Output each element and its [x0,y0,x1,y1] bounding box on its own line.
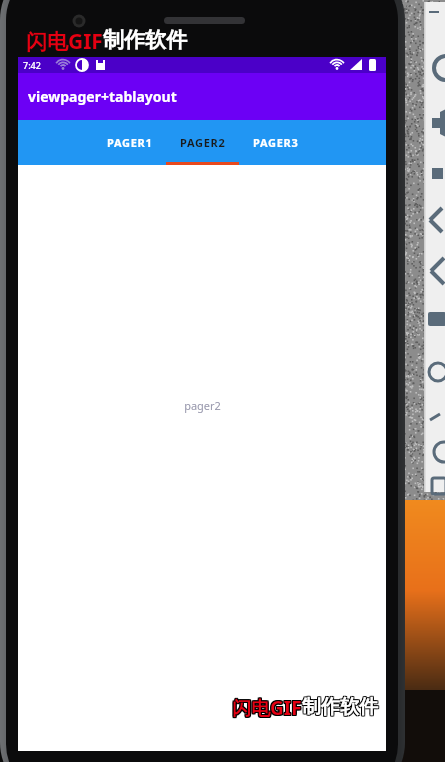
staticText: 制作软件 [302,695,378,719]
staticText: PAGER1 [107,135,153,150]
staticText: 闪电GIF [232,695,302,721]
staticText: 制作软件 [303,695,379,719]
staticText: PAGER3 [253,135,299,150]
staticText: pager2 [184,398,221,413]
staticText: 闪电GIF [231,696,301,722]
staticText: 制作软件 [302,696,378,720]
staticText: 制作软件 [301,694,377,718]
staticText: 制作软件 [303,694,379,718]
button[interactable]: PAGER3 [239,120,312,165]
staticText: 制作软件 [303,696,379,720]
staticText: 闪电GIF [231,694,301,720]
staticText: 制作软件 [301,696,377,720]
staticText: 制作软件 [302,694,378,718]
staticText: 闪电GIF [233,696,303,722]
button[interactable]: PAGER2 [166,120,239,165]
staticText: 闪电GIF [232,694,302,720]
staticText: 闪电GIF [232,696,302,722]
staticText: 闪电GIF [233,694,303,720]
staticText: 闪电GIF [26,27,103,56]
staticText: 制作软件 [301,695,377,719]
staticText: PAGER2 [180,135,226,150]
staticText: 闪电GIF [231,695,301,721]
staticText: 7:42 [23,59,41,71]
button[interactable]: PAGER1 [93,120,166,165]
staticText: viewpager+tablayout [28,87,177,106]
staticText: 闪电GIF [233,695,303,721]
staticText: 制作软件 [103,27,187,53]
